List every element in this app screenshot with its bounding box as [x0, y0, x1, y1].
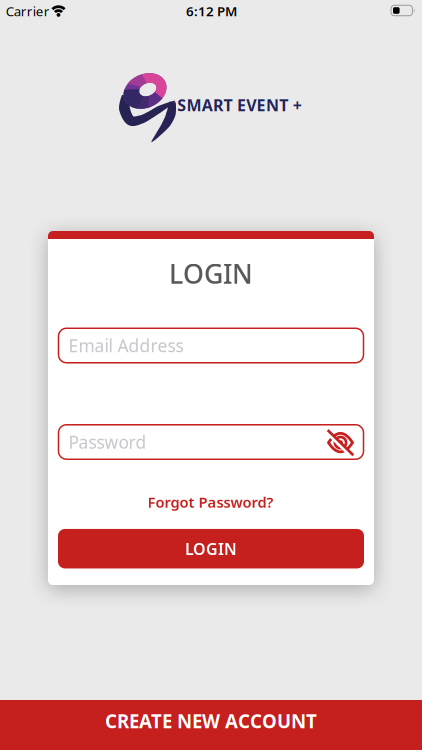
staticText: Password [68, 430, 146, 453]
staticText: 6:12 PM [186, 2, 237, 20]
staticText: SMART EVENT + [177, 94, 302, 116]
button[interactable]: CREATE NEW ACCOUNT [0, 700, 422, 750]
staticText: LOGIN [169, 256, 253, 291]
staticText: Carrier [6, 2, 50, 20]
staticText: Email Address [68, 334, 183, 357]
button[interactable]: LOGIN [58, 529, 364, 568]
staticText: Forgot Password? [147, 492, 273, 512]
button[interactable]: Password [58, 425, 363, 459]
button[interactable]: Email Address [58, 328, 363, 363]
staticText: CREATE NEW ACCOUNT [105, 709, 317, 733]
staticText: LOGIN [185, 538, 237, 559]
button[interactable]: Forgot Password? [147, 492, 273, 512]
